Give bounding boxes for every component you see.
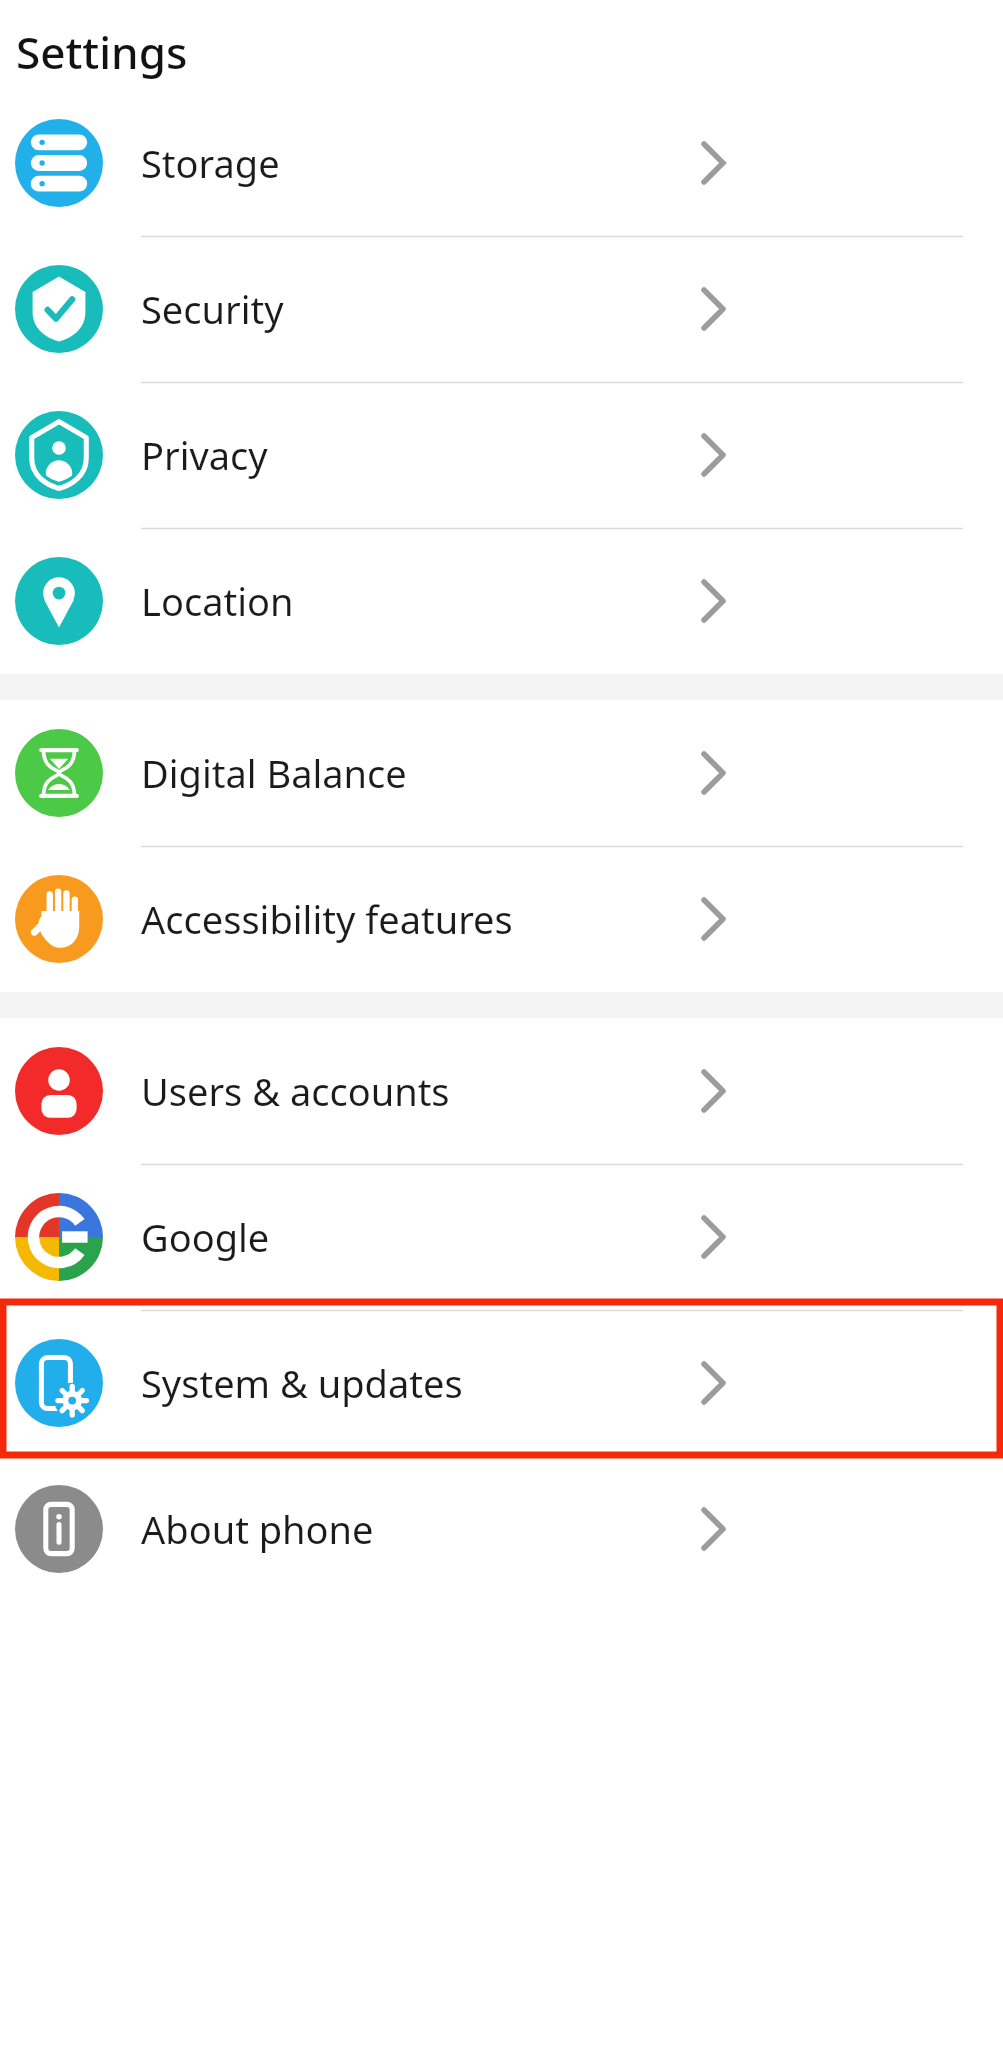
button[interactable]: Accessibility features	[0, 846, 1003, 992]
button[interactable]: Digital Balance	[0, 700, 1003, 846]
staticText: Storage	[141, 137, 280, 189]
staticText: About phone	[141, 1503, 374, 1555]
staticText: Users & accounts	[141, 1065, 450, 1117]
staticText: Digital Balance	[141, 747, 407, 799]
staticText: Location	[141, 575, 294, 627]
staticText: Settings	[16, 22, 188, 82]
button[interactable]: Users & accounts	[0, 1018, 1003, 1164]
staticText: System & updates	[141, 1357, 463, 1409]
staticText: Security	[141, 283, 284, 335]
staticText: Privacy	[141, 429, 268, 481]
button[interactable]: Location	[0, 528, 1003, 674]
button[interactable]: Privacy	[0, 382, 1003, 528]
button[interactable]: About phone	[0, 1456, 1003, 1602]
staticText: Google	[141, 1211, 270, 1263]
button[interactable]: Storage	[0, 90, 1003, 236]
staticText: Accessibility features	[141, 893, 513, 945]
button[interactable]: Security	[0, 236, 1003, 382]
button[interactable]: System & updates	[0, 1310, 1003, 1456]
button[interactable]: Google	[0, 1164, 1003, 1310]
